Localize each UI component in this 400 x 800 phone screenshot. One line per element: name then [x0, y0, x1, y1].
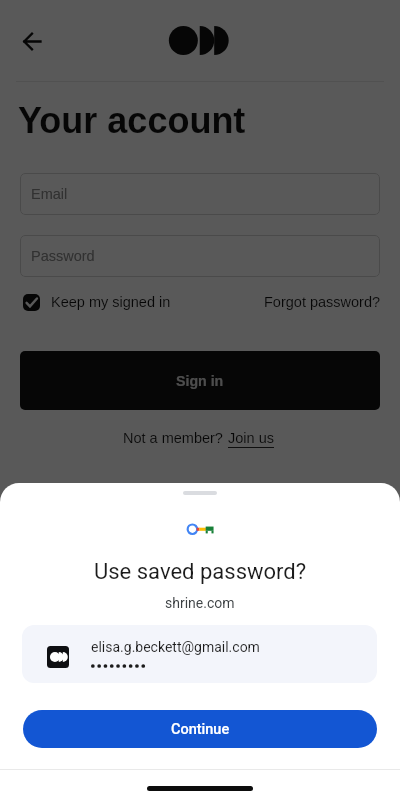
- staticText: Not a member?: [123, 430, 223, 446]
- button[interactable]: Join us: [228, 427, 275, 449]
- staticText: Keep my signed in: [51, 294, 171, 310]
- button[interactable]: Sign in: [20, 351, 380, 410]
- button[interactable]: Back: [18, 27, 46, 55]
- staticText: elisa.g.beckett@gmail.com: [91, 639, 260, 655]
- staticText: Use saved password?: [94, 559, 307, 585]
- staticText: Password: [31, 248, 95, 264]
- button[interactable]: elisa.g.beckett@gmail.com: [22, 625, 377, 683]
- staticText: Join us: [228, 430, 274, 446]
- staticText: Email: [31, 186, 68, 202]
- staticText: Continue: [171, 721, 230, 738]
- staticText: Forgot password?: [264, 294, 381, 310]
- button[interactable]: Keep my signed in: [23, 290, 171, 314]
- button[interactable]: Continue: [23, 710, 377, 748]
- staticText: shrine.com: [165, 595, 235, 611]
- staticText: Your account: [18, 100, 246, 140]
- button[interactable]: Email: [20, 173, 380, 215]
- button[interactable]: Forgot password?: [264, 290, 381, 314]
- staticText: Sign in: [176, 373, 224, 389]
- button[interactable]: Password: [20, 235, 380, 277]
